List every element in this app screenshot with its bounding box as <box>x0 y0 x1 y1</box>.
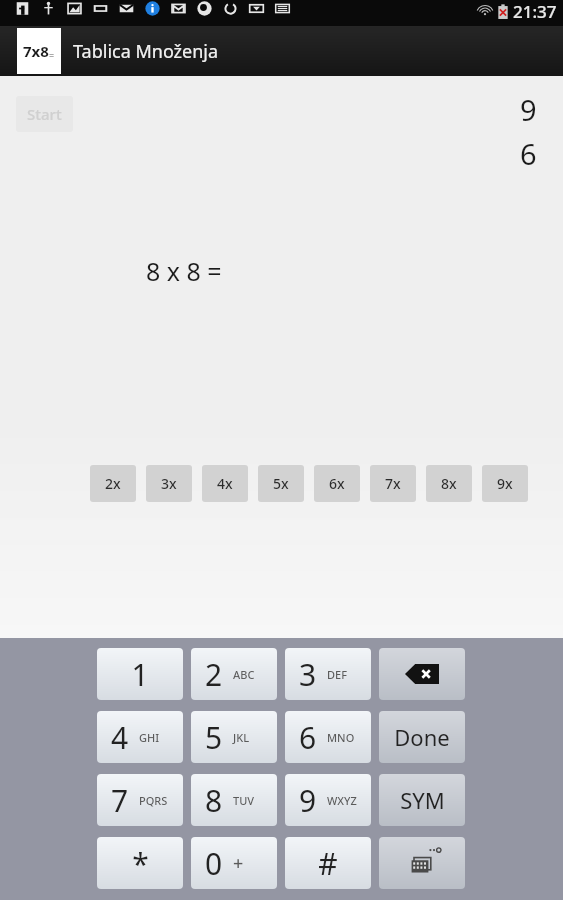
button[interactable]: 1 <box>97 648 183 700</box>
staticText: PQRS <box>139 793 168 808</box>
button[interactable]: SYM <box>379 774 465 826</box>
staticText: 9 <box>299 780 317 821</box>
button[interactable]: 5x <box>258 465 304 502</box>
staticText: 7x8 <box>23 41 49 61</box>
button[interactable]: 2 <box>191 648 277 700</box>
staticText: * <box>132 843 149 884</box>
button[interactable]: 9x <box>482 465 528 502</box>
staticText: 5 <box>205 717 223 758</box>
staticText: + <box>233 851 244 876</box>
button[interactable]: 5 <box>191 711 277 763</box>
staticText: 0 <box>205 843 223 884</box>
button[interactable]: Backspace <box>379 648 465 700</box>
button[interactable]: 8 <box>191 774 277 826</box>
staticText: 2x <box>105 474 121 493</box>
button[interactable]: * <box>97 837 183 889</box>
staticText: = <box>49 49 55 61</box>
button[interactable]: 3 <box>285 648 371 700</box>
button[interactable]: Done <box>379 711 465 763</box>
button[interactable]: # <box>285 837 371 889</box>
staticText: 6 <box>299 717 317 758</box>
staticText: 8 <box>205 780 223 821</box>
staticText: 4x <box>217 474 233 493</box>
staticText: # <box>318 843 338 884</box>
staticText: 3 <box>299 654 317 695</box>
staticText: 2 <box>205 654 223 695</box>
staticText: 6 <box>520 134 537 173</box>
staticText: 7 <box>111 780 129 821</box>
button[interactable]: 6x <box>314 465 360 502</box>
staticText: 8 x 8 = <box>146 254 222 288</box>
staticText: Tablica Množenja <box>73 39 219 64</box>
button[interactable]: 0 <box>191 837 277 889</box>
button[interactable]: 2x <box>90 465 136 502</box>
staticText: 1 <box>131 654 149 695</box>
button[interactable]: 8x <box>426 465 472 502</box>
button[interactable]: 7 <box>97 774 183 826</box>
staticText: 21:37 <box>513 0 557 23</box>
button[interactable]: Switch keyboard <box>379 837 465 889</box>
staticText: ABC <box>233 667 255 682</box>
staticText: GHI <box>139 730 160 745</box>
staticText: 5x <box>273 474 289 493</box>
staticText: WXYZ <box>327 793 357 808</box>
staticText: 6x <box>329 474 345 493</box>
button[interactable]: 4x <box>202 465 248 502</box>
button[interactable]: 3x <box>146 465 192 502</box>
staticText: Start <box>27 104 62 124</box>
button[interactable]: 9 <box>285 774 371 826</box>
staticText: 3x <box>161 474 177 493</box>
staticText: 8x <box>441 474 457 493</box>
staticText: TUV <box>233 793 255 808</box>
staticText: 4 <box>111 717 129 758</box>
button[interactable]: 7x <box>370 465 416 502</box>
button[interactable]: 4 <box>97 711 183 763</box>
staticText: Done <box>394 722 450 752</box>
button[interactable]: Start <box>16 96 73 132</box>
staticText: MNO <box>327 730 355 745</box>
staticText: DEF <box>327 667 347 682</box>
staticText: SYM <box>400 785 445 815</box>
button[interactable]: 6 <box>285 711 371 763</box>
staticText: JKL <box>233 730 250 745</box>
staticText: 9 <box>520 90 537 129</box>
staticText: 9x <box>497 474 513 493</box>
staticText: 7x <box>385 474 401 493</box>
